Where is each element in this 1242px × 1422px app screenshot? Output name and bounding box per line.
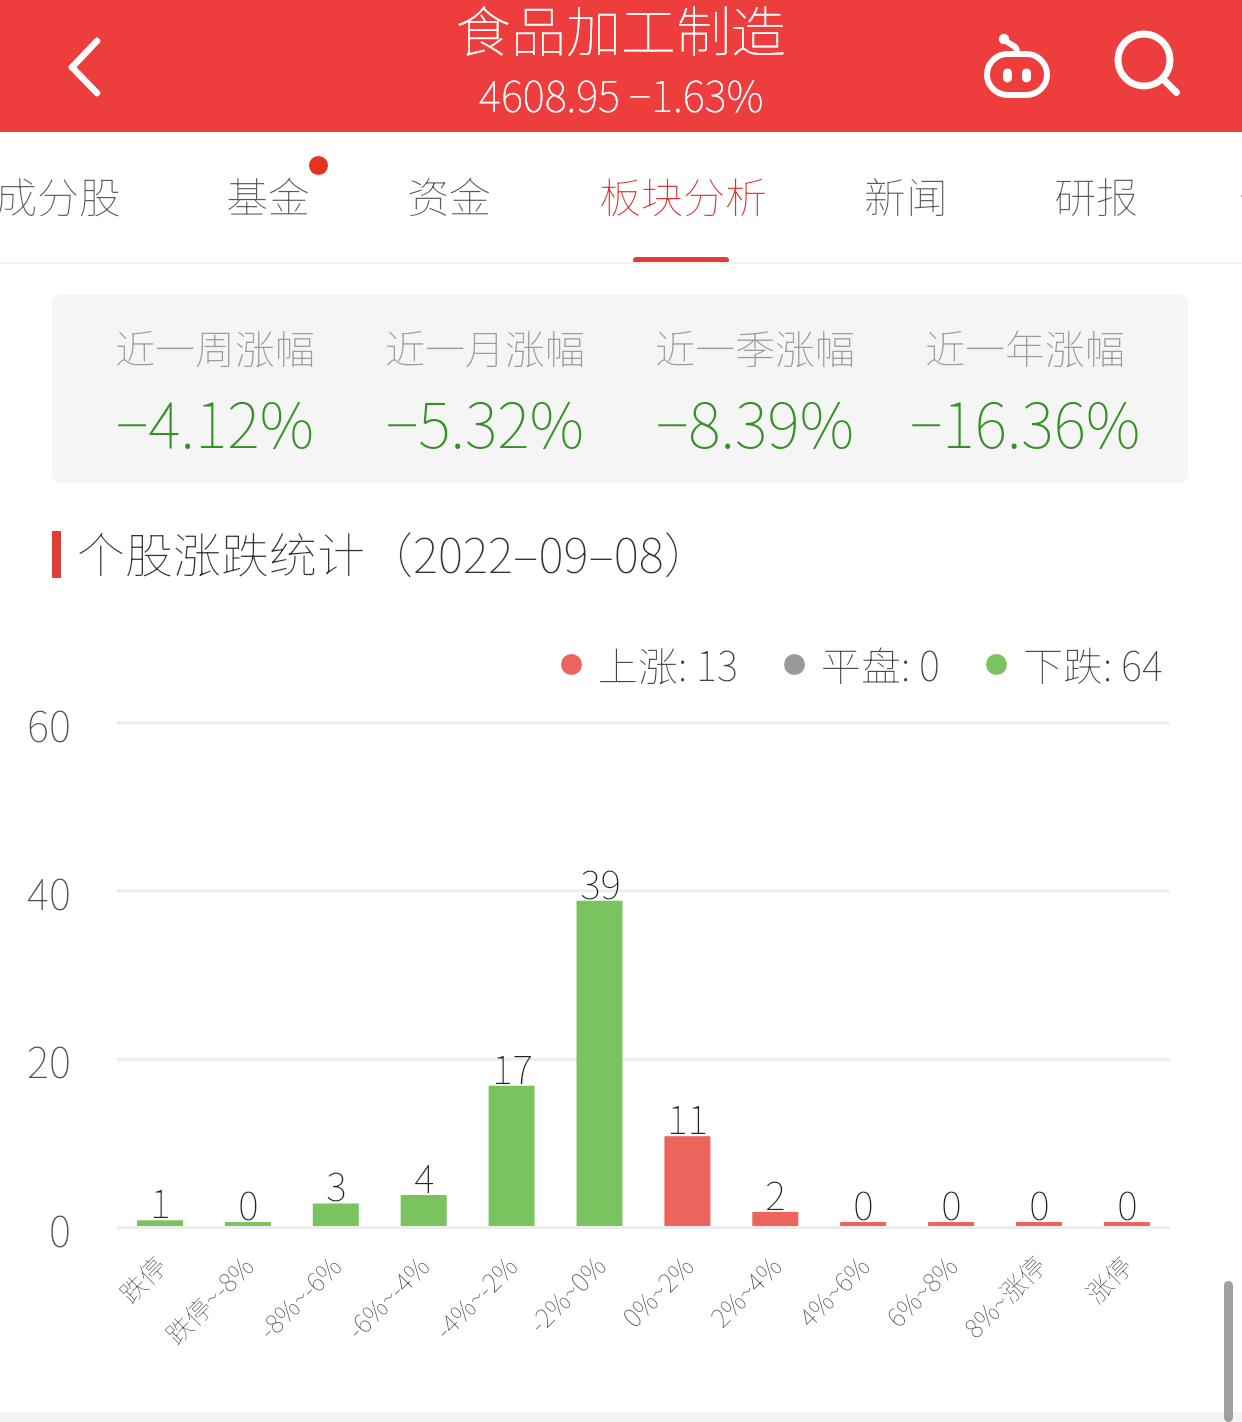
- staticText: 近一季涨幅: [655, 318, 855, 376]
- button[interactable]: 成分股: [0, 128, 173, 261]
- staticText: 2%~4%: [701, 1247, 789, 1335]
- staticText: 跌停: [110, 1247, 174, 1311]
- staticText: 0: [853, 1175, 874, 1231]
- staticText: 跌停~-8%: [156, 1247, 261, 1352]
- staticText: -2%~0%: [519, 1247, 613, 1341]
- staticText: 成分股: [0, 164, 122, 225]
- staticText: 0: [1029, 1175, 1050, 1231]
- staticText: -6%~-4%: [337, 1247, 437, 1347]
- button[interactable]: 资金: [355, 128, 543, 261]
- staticText: 近一年涨幅: [925, 318, 1125, 376]
- staticText: −4.12%: [116, 376, 315, 466]
- staticText: 板块分析: [599, 164, 768, 225]
- staticText: 新闻: [864, 164, 949, 225]
- staticText: 0: [941, 1175, 962, 1231]
- staticText: 近一周涨幅: [115, 318, 315, 376]
- staticText: 40: [27, 861, 71, 922]
- button[interactable]: 研报: [1002, 128, 1190, 261]
- staticText: 近一月涨幅: [385, 318, 585, 376]
- staticText: −5.32%: [386, 376, 585, 466]
- staticText: 4%~6%: [789, 1247, 877, 1335]
- button[interactable]: 板块分析: [547, 128, 819, 261]
- staticText: 0: [1117, 1175, 1138, 1231]
- staticText: 涨停: [1076, 1247, 1140, 1311]
- staticText: 1: [150, 1173, 171, 1229]
- staticText: 11: [667, 1089, 708, 1145]
- staticText: 2: [765, 1165, 786, 1221]
- button[interactable]: 新闻: [812, 128, 1000, 261]
- staticText: 4608.95 −1.63%: [479, 63, 764, 124]
- staticText: 0%~2%: [613, 1247, 701, 1335]
- staticText: 60: [27, 693, 71, 754]
- staticText: 6%~8%: [877, 1247, 965, 1335]
- button[interactable]: 基金: [174, 128, 362, 261]
- staticText: 食品加工制造: [456, 0, 787, 68]
- staticText: 公告: [1238, 164, 1242, 225]
- staticText: 3: [326, 1156, 347, 1212]
- staticText: −16.36%: [910, 376, 1141, 466]
- staticText: 17: [492, 1039, 533, 1095]
- staticText: 基金: [226, 164, 311, 225]
- staticText: 20: [27, 1029, 71, 1090]
- button[interactable]: Search: [1086, 0, 1214, 132]
- staticText: 上涨: 13: [598, 635, 738, 693]
- staticText: -4%~-2%: [425, 1247, 525, 1347]
- staticText: 平盘: 0: [821, 635, 940, 693]
- staticText: 0: [238, 1175, 259, 1231]
- staticText: 研报: [1054, 164, 1139, 225]
- staticText: 个股涨跌统计（2022–09–08）: [77, 517, 712, 587]
- button[interactable]: Back: [3, 1, 165, 133]
- button[interactable]: AI assistant: [953, 0, 1081, 132]
- staticText: −8.39%: [656, 376, 855, 466]
- staticText: 下跌: 64: [1023, 635, 1163, 693]
- button[interactable]: 公告: [1186, 128, 1242, 261]
- staticText: 资金: [407, 164, 492, 225]
- staticText: 4: [414, 1148, 435, 1204]
- staticText: 0: [49, 1198, 71, 1259]
- staticText: -8%~-6%: [249, 1247, 349, 1347]
- staticText: 39: [580, 854, 621, 910]
- staticText: 8%~涨停: [954, 1247, 1053, 1346]
